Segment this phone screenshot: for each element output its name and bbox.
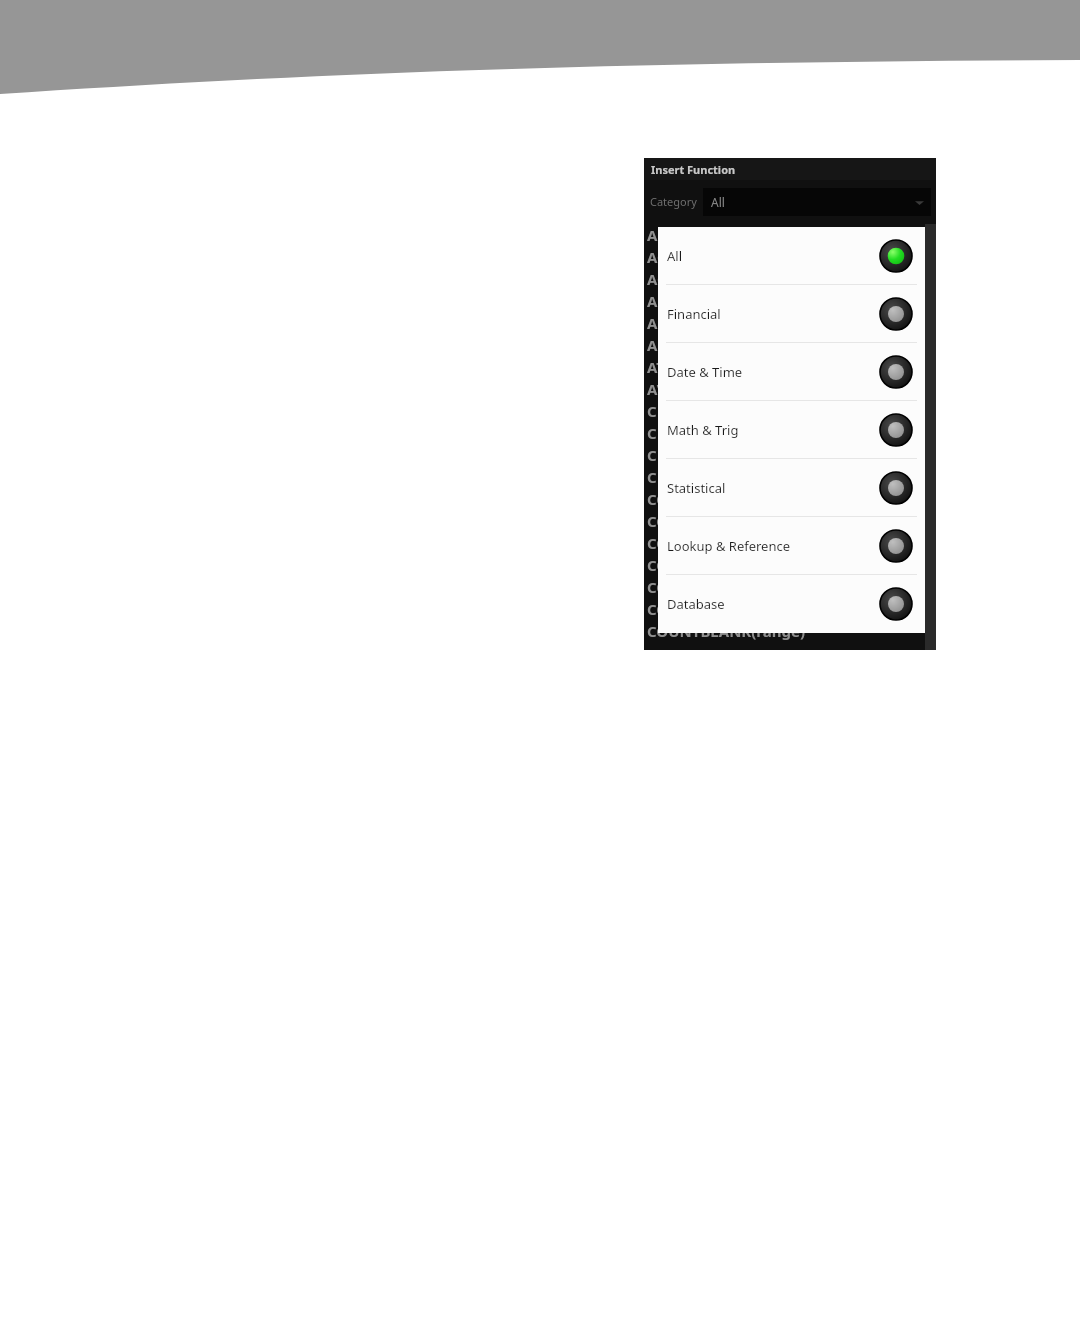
staticText: Database xyxy=(667,595,879,613)
staticText: Insert Function xyxy=(651,162,736,177)
staticText: All xyxy=(711,194,725,210)
staticText: ASIN(number) xyxy=(647,335,754,355)
staticText: ATAN(number) xyxy=(647,357,756,377)
staticText: CEILING(num) xyxy=(647,401,753,421)
staticText: Statistical xyxy=(667,479,879,497)
button[interactable]: Financial xyxy=(658,285,925,342)
staticText: Math & Trig xyxy=(667,421,879,439)
button[interactable]: Math & Trig xyxy=(658,401,925,458)
staticText: CODE(text) xyxy=(647,489,729,509)
staticText: CLEAN(text) xyxy=(647,467,737,487)
button[interactable]: Lookup & Reference xyxy=(658,517,925,574)
staticText: COUNTBLANK(range) xyxy=(647,621,806,641)
staticText: ADDRESS(row) xyxy=(647,291,753,311)
staticText: Financial xyxy=(667,305,879,323)
other: Financial xyxy=(879,297,913,331)
other: All selected xyxy=(879,239,913,273)
staticText: COLUMN(ref) xyxy=(647,511,747,531)
staticText: AND(logical) xyxy=(647,313,740,333)
button[interactable]: All xyxy=(703,188,931,216)
staticText: CHOOSE(index) xyxy=(647,445,760,465)
other: Lookup & Reference xyxy=(879,529,913,563)
staticText: Category xyxy=(650,194,697,209)
staticText: COS(number) xyxy=(647,555,746,575)
staticText: ACOSH(number) xyxy=(647,269,768,289)
button[interactable]: Database xyxy=(658,575,925,632)
staticText: COUNTA(value) xyxy=(647,599,761,619)
staticText: AVERAGE(num) xyxy=(647,379,759,399)
staticText: Lookup & Reference xyxy=(667,537,879,555)
staticText: ABS(number) xyxy=(647,225,746,245)
button[interactable]: Date & Time xyxy=(658,343,925,400)
other: Date & Time xyxy=(879,355,913,389)
other: Statistical xyxy=(879,471,913,505)
staticText: COUNT(value) xyxy=(647,577,752,597)
button[interactable]: All xyxy=(658,227,925,284)
staticText: All xyxy=(667,247,879,265)
staticText: CONCAT(text) xyxy=(647,533,749,553)
staticText: ACOS(number) xyxy=(647,247,756,267)
other: Math & Trig xyxy=(879,413,913,447)
staticText: Date & Time xyxy=(667,363,879,381)
staticText: CHAR(number) xyxy=(647,423,758,443)
other: Database xyxy=(879,587,913,621)
button[interactable]: Statistical xyxy=(658,459,925,516)
